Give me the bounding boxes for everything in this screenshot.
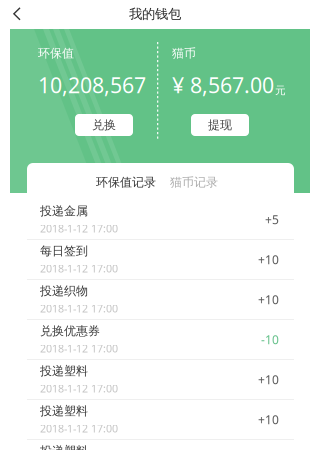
staticText: +10 — [258, 371, 279, 387]
staticText: 投递金属 — [40, 203, 88, 218]
staticText: 兑换 — [92, 118, 116, 132]
staticText: 元 — [275, 84, 286, 97]
button[interactable]: 投递金属 — [27, 200, 294, 239]
staticText: 猫币 — [172, 46, 196, 61]
staticText: 10,208,567 — [38, 71, 146, 99]
staticText: 2018-1-12 17:00 — [40, 301, 118, 315]
button[interactable]: 兑换 — [75, 114, 133, 136]
staticText: +10 — [258, 291, 279, 307]
staticText: +10 — [258, 251, 279, 267]
staticText: 环保值 — [38, 46, 74, 61]
staticText: 兑换优惠券 — [40, 323, 100, 338]
staticText: 环保值记录 — [96, 175, 156, 190]
staticText: 2018-1-12 17:00 — [40, 341, 118, 355]
staticText: -10 — [261, 331, 279, 347]
staticText: 投递塑料 — [40, 403, 88, 418]
staticText: 投递塑料 — [40, 363, 88, 378]
button[interactable]: 投递塑料 — [27, 360, 294, 399]
staticText: 2018-1-12 17:00 — [40, 221, 118, 235]
button[interactable]: 投递织物 — [27, 280, 294, 319]
button[interactable]: 投递塑料 — [27, 440, 294, 450]
staticText: 投递塑料 — [40, 443, 88, 450]
staticText: 投递织物 — [40, 283, 88, 298]
staticText: ¥ 8,567.00 — [172, 71, 274, 99]
staticText: 猫币记录 — [170, 175, 218, 190]
staticText: 2018-1-12 17:00 — [40, 261, 118, 275]
staticText: 2018-1-12 17:00 — [40, 421, 118, 435]
button[interactable]: 投递塑料 — [27, 400, 294, 439]
button[interactable]: 兑换优惠券 — [27, 320, 294, 359]
staticText: 我的钱包 — [129, 6, 181, 22]
staticText: +5 — [265, 211, 279, 227]
button[interactable]: 环保值记录 — [92, 163, 160, 192]
button[interactable]: 提现 — [191, 114, 249, 136]
staticText: 2018-1-12 17:00 — [40, 381, 118, 395]
staticText: 每日签到 — [40, 243, 88, 258]
button[interactable]: Back — [0, 0, 34, 28]
staticText: 提现 — [208, 118, 232, 132]
staticText: +10 — [258, 411, 279, 427]
button[interactable]: 每日签到 — [27, 240, 294, 279]
button[interactable]: 猫币记录 — [167, 163, 221, 192]
